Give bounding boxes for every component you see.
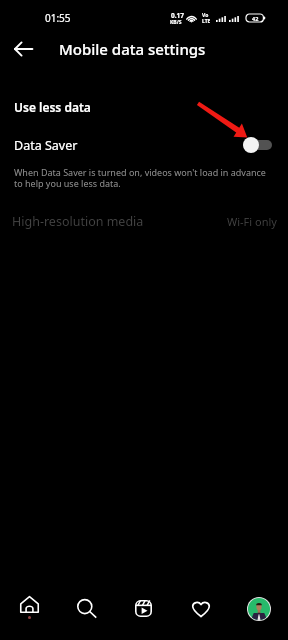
staticText: Mobile data settings <box>59 39 206 59</box>
staticText: 01:55 <box>45 11 71 25</box>
staticText: 42 <box>252 15 259 22</box>
staticText: Vo <box>202 12 209 19</box>
button[interactable]: High-resolution media <box>0 209 288 233</box>
staticText: LTE <box>202 18 211 25</box>
button[interactable]: Likes <box>172 585 230 632</box>
button[interactable]: Data Saver <box>238 131 278 159</box>
button[interactable]: Profile <box>230 585 288 632</box>
button[interactable]: Home <box>0 585 57 632</box>
staticText: Use less data <box>14 99 91 115</box>
button[interactable]: Back <box>5 27 42 69</box>
staticText: Wi-Fi only <box>227 214 277 229</box>
staticText: KB/S <box>170 19 182 26</box>
button[interactable]: Reels <box>114 585 172 632</box>
button[interactable]: Search <box>57 585 114 632</box>
staticText: High-resolution media <box>12 213 144 230</box>
staticText: Data Saver <box>14 137 78 154</box>
staticText: When Data Saver is turned on, videos won… <box>14 166 272 190</box>
button[interactable]: Data Saver <box>0 133 288 157</box>
staticText: 0.17 <box>171 11 184 20</box>
